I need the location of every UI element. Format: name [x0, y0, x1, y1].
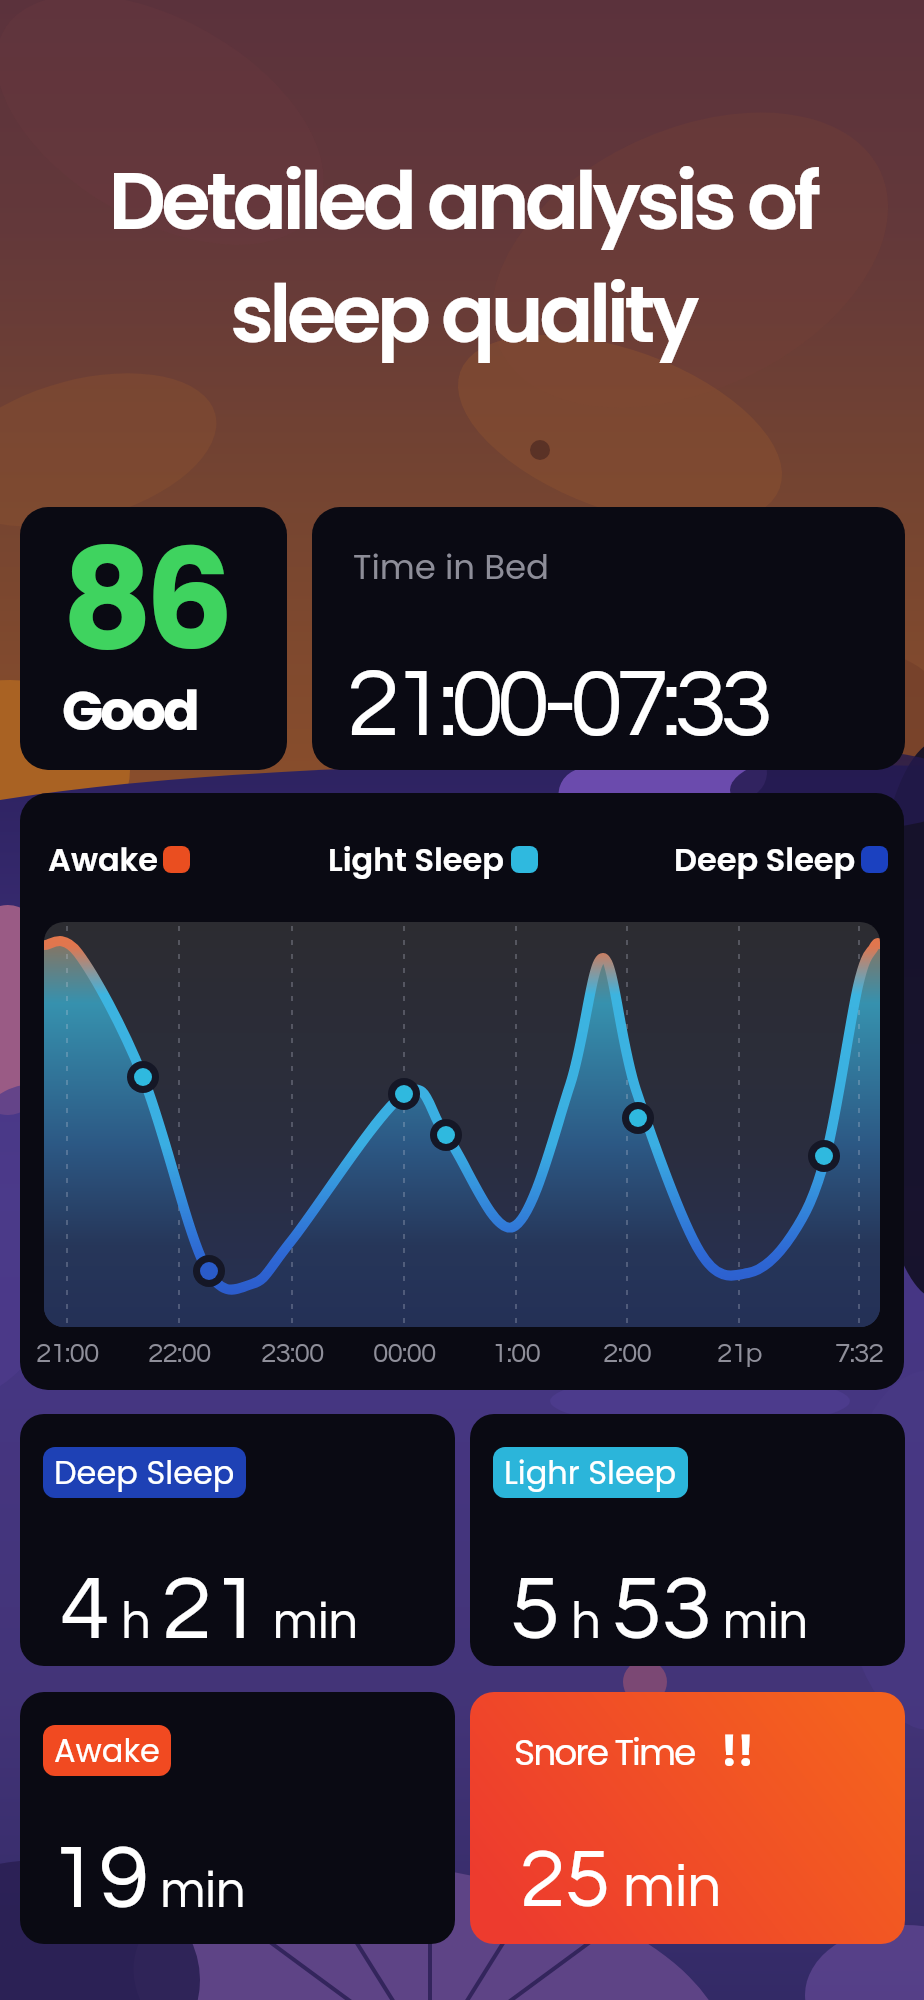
staticText: 86 [62, 507, 226, 697]
button[interactable]: Awake [20, 1692, 455, 1944]
staticText: 2:00 [603, 1339, 651, 1368]
staticText: 19 min [49, 1832, 246, 1926]
staticText: 7:32 [835, 1339, 883, 1368]
staticText: !! [721, 1722, 754, 1781]
button[interactable]: 86 [20, 507, 287, 770]
button[interactable]: Awake [20, 793, 904, 1390]
staticText: 21:00 [36, 1339, 99, 1368]
staticText: Lighr Sleep [504, 1450, 677, 1495]
staticText: Time in Bed [353, 543, 550, 591]
button[interactable]: Lighr Sleep [470, 1414, 905, 1666]
staticText: 1:00 [492, 1339, 540, 1368]
staticText: Good [62, 673, 197, 749]
staticText: Deep Sleep [54, 1450, 235, 1495]
button[interactable]: Deep Sleep [20, 1414, 455, 1666]
staticText: 4 h 21 min [60, 1563, 359, 1657]
button[interactable]: Snore Time [470, 1692, 905, 1944]
staticText: Awake [48, 837, 159, 882]
staticText: 23:00 [261, 1339, 324, 1368]
staticText: Deep Sleep [674, 837, 856, 882]
staticText: Light Sleep [328, 837, 505, 882]
staticText: 21p [717, 1339, 762, 1368]
staticText: 25 min [520, 1839, 722, 1923]
button[interactable]: Time in Bed [312, 507, 905, 770]
staticText: Snore Time [514, 1727, 695, 1777]
staticText: 00:00 [373, 1339, 436, 1368]
staticText: 22:00 [148, 1339, 211, 1368]
staticText: 21:00-07:33 [347, 656, 766, 755]
staticText: 5 h 53 min [510, 1563, 809, 1657]
staticText: Detailed analysis of sleep quality [108, 145, 817, 370]
staticText: Awake [54, 1728, 160, 1773]
